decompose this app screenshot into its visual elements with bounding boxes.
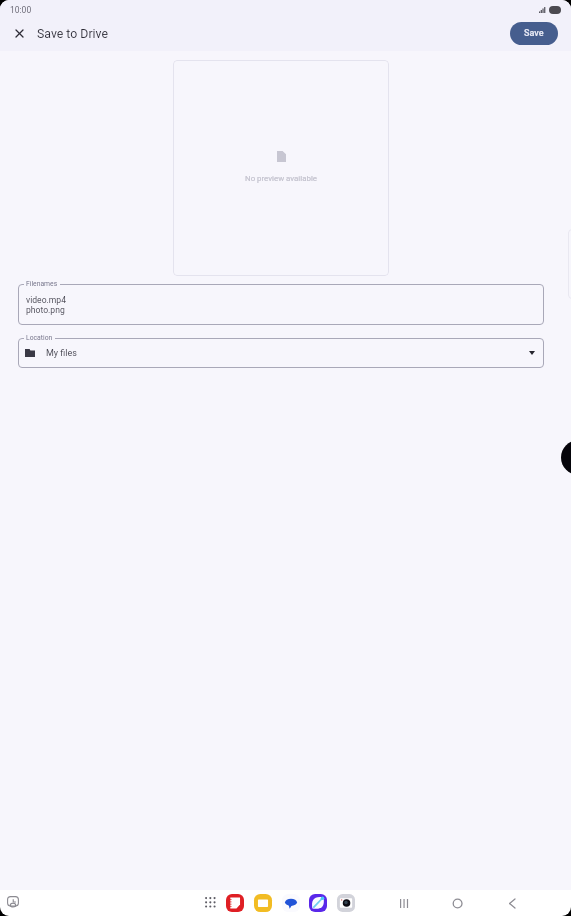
button[interactable]: Samsung Notes — [226, 894, 244, 912]
button[interactable]: Edge panel — [561, 440, 571, 475]
staticText: video.mp4 — [26, 295, 67, 305]
staticText: Filenames — [26, 280, 58, 288]
button[interactable]: Home — [444, 891, 473, 915]
staticText: No preview available — [245, 174, 318, 183]
button[interactable]: Camera — [337, 894, 355, 912]
staticText: Save to Drive — [37, 27, 108, 41]
button[interactable]: Save — [510, 22, 558, 45]
button[interactable]: Apps — [202, 894, 219, 911]
button[interactable]: Recents — [390, 891, 419, 915]
button[interactable] — [18, 338, 544, 368]
button[interactable]: Messages — [282, 894, 300, 912]
button[interactable]: Back — [497, 891, 526, 915]
button[interactable]: Close — [12, 26, 27, 41]
staticText: My files — [46, 348, 77, 359]
button[interactable]: Internet — [309, 894, 327, 912]
button[interactable]: Recent apps history — [2, 892, 24, 914]
staticText: Location — [26, 334, 53, 342]
staticText: photo.png — [26, 305, 65, 315]
staticText: 10:00 — [10, 5, 32, 15]
staticText: Save — [524, 28, 544, 39]
button[interactable]: My Files — [254, 894, 272, 912]
